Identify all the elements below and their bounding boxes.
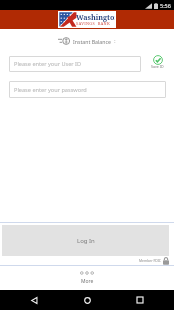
staticText: Save ID: [151, 64, 164, 69]
staticText: Washington: [76, 12, 115, 22]
staticText: Log In: [77, 237, 95, 245]
button[interactable]: Please enter your User ID: [9, 56, 141, 72]
button[interactable]: Recent apps: [127, 290, 153, 310]
staticText: 5:56: [160, 2, 171, 9]
button[interactable]: Please enter your password: [9, 81, 166, 98]
button[interactable]: More: [0, 266, 174, 290]
button[interactable]: Save ID: [151, 55, 164, 70]
button[interactable]: Back: [21, 290, 47, 310]
staticText: :: [114, 37, 116, 45]
staticText: Member FDIC: [139, 258, 161, 263]
staticText: Please enter your User ID: [14, 60, 82, 68]
button[interactable]: Instant Balance: [58, 37, 116, 45]
button[interactable]: Home: [74, 290, 100, 310]
button[interactable]: Log In: [2, 225, 169, 256]
staticText: Please enter your password: [14, 86, 87, 94]
staticText: Instant Balance: [73, 38, 111, 45]
staticText: SAVINGS BANK: [76, 21, 111, 26]
staticText: More: [81, 278, 94, 285]
